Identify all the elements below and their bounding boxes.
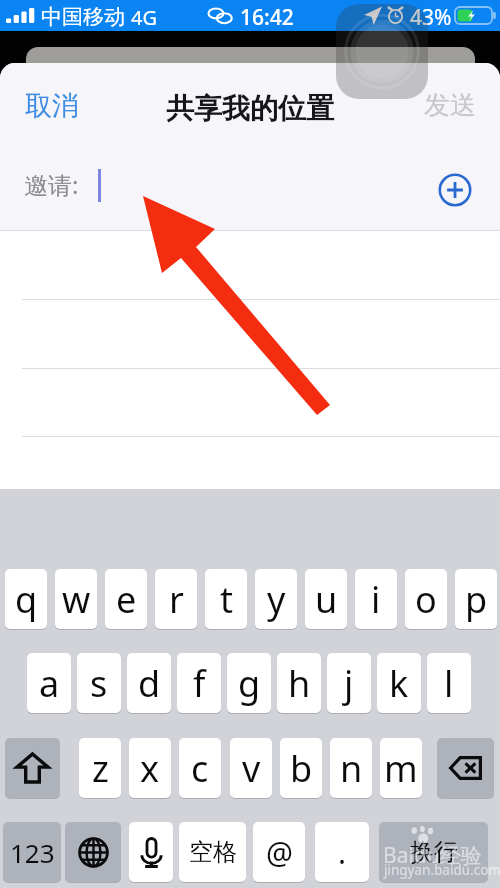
staticText: 4G <box>131 4 157 31</box>
button[interactable]: u <box>305 569 347 629</box>
button[interactable]: p <box>455 569 497 629</box>
button[interactable]: b <box>280 738 322 798</box>
staticText: . <box>338 832 347 873</box>
staticText: p <box>465 575 488 624</box>
button[interactable]: i <box>355 569 397 629</box>
button[interactable]: f <box>177 653 221 713</box>
button[interactable]: 发送 <box>420 85 480 126</box>
button[interactable]: Shift <box>5 738 60 798</box>
button[interactable]: j <box>327 653 371 713</box>
staticText: z <box>92 744 109 793</box>
staticText: j <box>344 659 354 708</box>
button[interactable]: n <box>330 738 372 798</box>
button[interactable]: c <box>179 738 221 798</box>
staticText: c <box>191 744 209 793</box>
staticText: a <box>39 659 60 708</box>
staticText: b <box>290 744 313 793</box>
staticText: @ <box>266 832 293 873</box>
button[interactable]: . <box>315 822 369 882</box>
button[interactable]: 换行 <box>379 822 488 882</box>
staticText: l <box>444 659 454 708</box>
button[interactable]: d <box>127 653 171 713</box>
staticText: 共享我的位置 <box>166 91 334 126</box>
button[interactable]: v <box>230 738 272 798</box>
button[interactable]: Dictation <box>129 822 173 882</box>
button[interactable]: o <box>405 569 447 629</box>
button[interactable]: 空格 <box>179 822 246 882</box>
staticText: n <box>340 744 363 793</box>
staticText: 中国移动 <box>41 4 125 30</box>
staticText: 发送 <box>424 89 476 122</box>
staticText: 空格 <box>189 837 237 867</box>
button[interactable]: q <box>5 569 47 629</box>
staticText: i <box>371 575 381 624</box>
staticText: Baidu经验 <box>383 841 482 870</box>
button[interactable]: Switch keyboard <box>65 822 121 882</box>
staticText: 换行 <box>410 837 458 867</box>
staticText: e <box>116 575 137 624</box>
button[interactable]: AssistiveTouch <box>336 4 428 99</box>
button[interactable]: w <box>55 569 97 629</box>
staticText: jingyan.baidu.com <box>384 861 500 879</box>
staticText: y <box>267 575 286 624</box>
button[interactable]: a <box>27 653 71 713</box>
staticText: m <box>384 744 418 793</box>
button[interactable]: l <box>427 653 471 713</box>
staticText: 邀请: <box>24 168 79 201</box>
button[interactable]: Backspace <box>437 738 494 798</box>
button[interactable]: y <box>255 569 297 629</box>
staticText: 43% <box>410 3 452 32</box>
staticText: f <box>193 659 206 708</box>
button[interactable]: @ <box>253 822 305 882</box>
staticText: h <box>288 659 311 708</box>
button[interactable]: e <box>105 569 147 629</box>
button[interactable]: g <box>227 653 271 713</box>
button[interactable]: x <box>129 738 171 798</box>
staticText: g <box>238 659 261 708</box>
button[interactable]: h <box>277 653 321 713</box>
staticText: 取消 <box>25 89 79 123</box>
staticText: 16:42 <box>240 3 294 32</box>
staticText: r <box>169 575 184 624</box>
staticText: x <box>140 744 160 793</box>
staticText: d <box>138 659 161 708</box>
button[interactable]: r <box>155 569 197 629</box>
button[interactable]: 取消 <box>21 85 83 127</box>
staticText: w <box>62 575 91 624</box>
staticText: t <box>220 575 233 624</box>
staticText: s <box>90 659 108 708</box>
button[interactable]: s <box>77 653 121 713</box>
button[interactable]: k <box>377 653 421 713</box>
button[interactable]: m <box>380 738 422 798</box>
button[interactable]: Add contact <box>433 168 477 212</box>
button[interactable]: 123 <box>3 822 61 882</box>
staticText: u <box>315 575 338 624</box>
staticText: 123 <box>10 835 55 870</box>
staticText: q <box>15 575 38 624</box>
button[interactable]: z <box>79 738 121 798</box>
button[interactable]: t <box>205 569 247 629</box>
staticText: k <box>389 659 409 708</box>
staticText: v <box>242 744 261 793</box>
staticText: o <box>415 575 437 624</box>
